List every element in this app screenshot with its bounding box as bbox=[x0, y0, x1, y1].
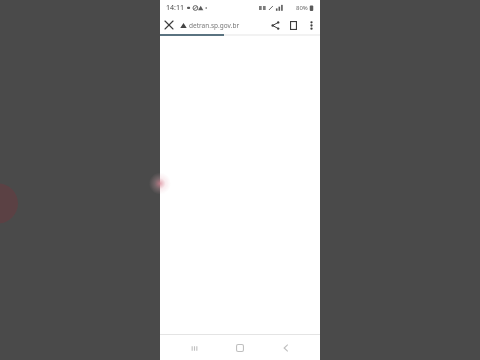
button[interactable]: Back bbox=[274, 336, 298, 360]
staticText: 14:11 bbox=[166, 3, 184, 13]
button[interactable]: Recents bbox=[182, 336, 206, 360]
button[interactable]: Share bbox=[266, 16, 284, 34]
staticText: 80% bbox=[296, 4, 308, 12]
button[interactable]: More options bbox=[302, 16, 320, 34]
staticText: detran.sp.gov.br bbox=[189, 21, 240, 30]
button[interactable]: detran.sp.gov.br bbox=[180, 21, 266, 30]
button[interactable]: Close bbox=[160, 16, 178, 34]
button[interactable]: Home bbox=[228, 336, 252, 360]
button[interactable]: Bookmark bbox=[284, 16, 302, 34]
